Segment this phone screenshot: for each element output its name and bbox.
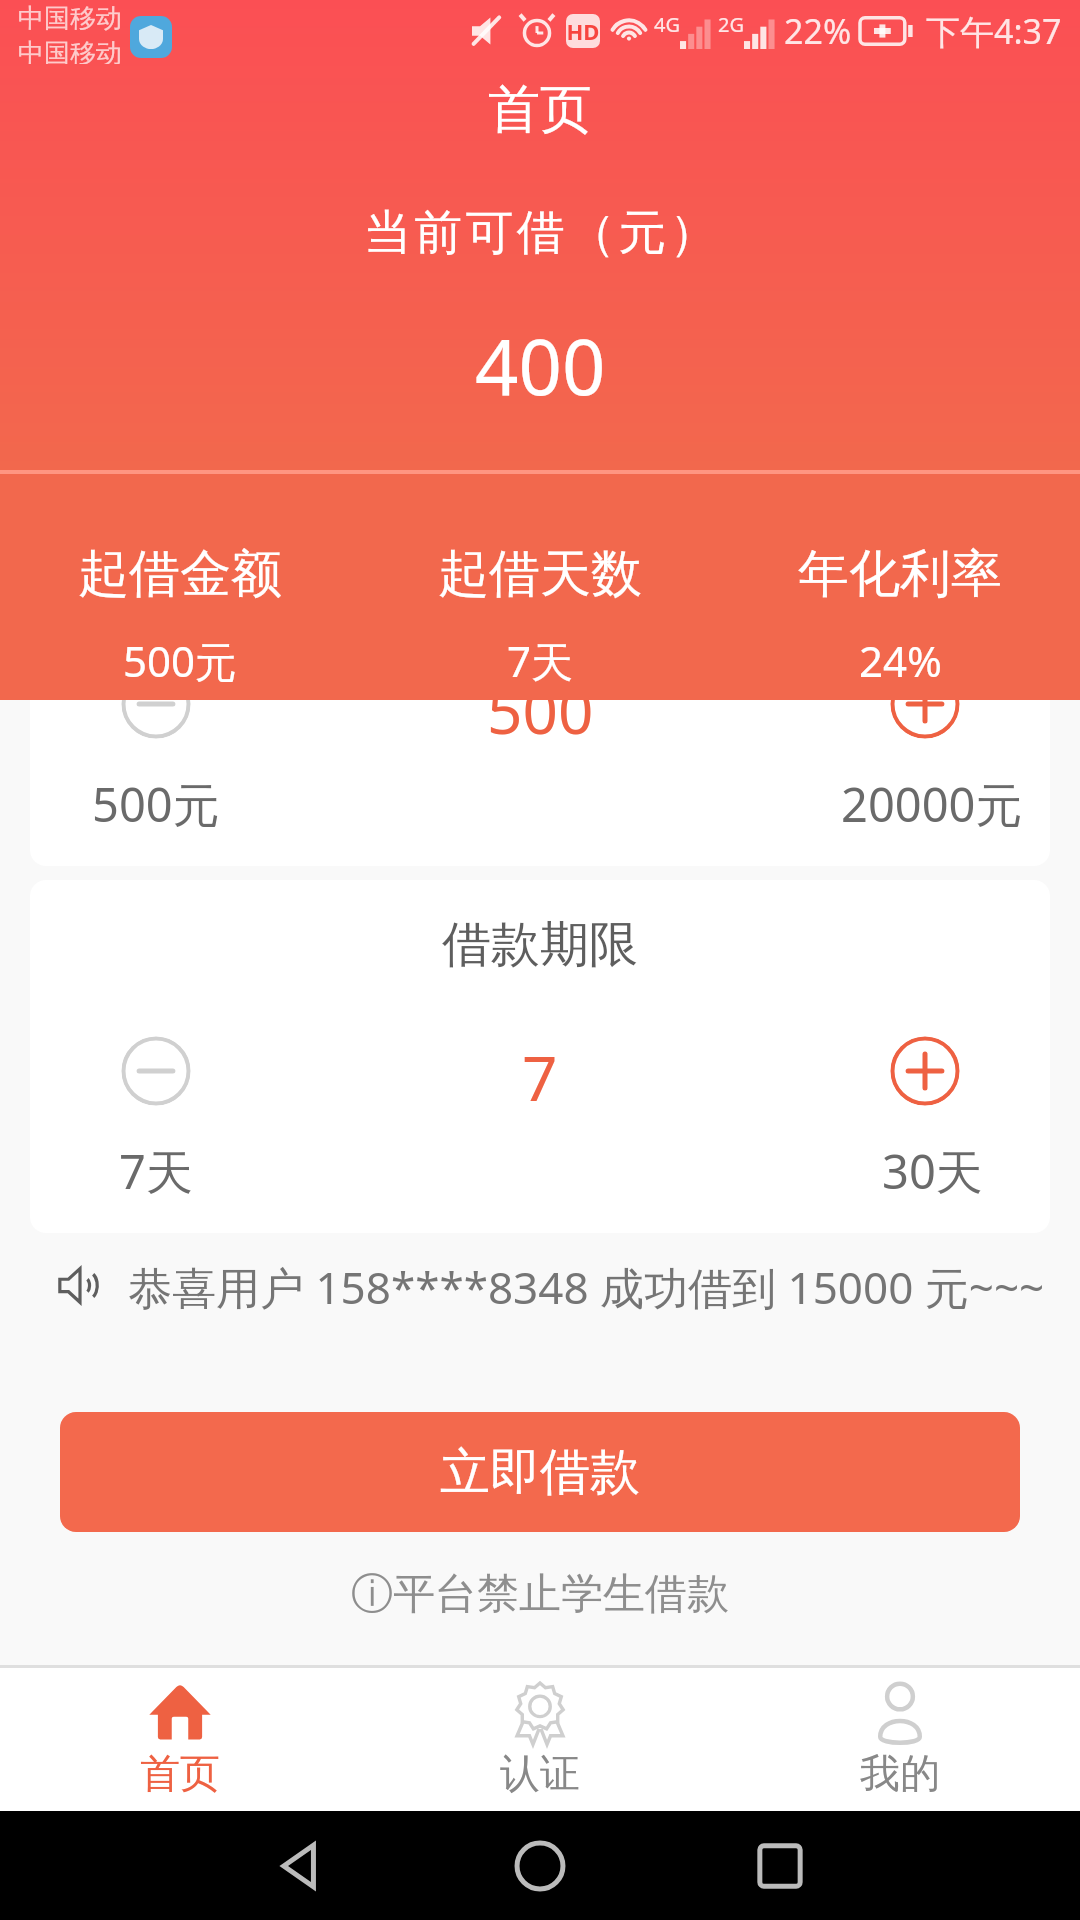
staticText: 500元 [92, 772, 220, 836]
button[interactable]: Back [180, 1811, 420, 1920]
staticText: 2G [718, 11, 744, 38]
staticText: 500 [487, 668, 594, 752]
staticText: 起借金额 [78, 542, 282, 606]
button[interactable]: Increase [890, 669, 960, 739]
staticText: 我的 [860, 1748, 940, 1798]
staticText: 400 [475, 314, 606, 418]
staticText: 7 [522, 1035, 558, 1119]
staticText: 首页 [140, 1748, 220, 1798]
button[interactable]: Decrease [121, 669, 191, 739]
staticText: 4G [654, 11, 680, 38]
staticText: 中国移动 [18, 37, 122, 64]
staticText: 借款金额 [442, 547, 638, 609]
staticText: 中国移动 [18, 2, 122, 35]
button[interactable]: Recent apps [660, 1811, 900, 1920]
staticText: 立即借款 [440, 1441, 640, 1504]
button[interactable]: Increase [890, 1036, 960, 1106]
staticText: 7天 [119, 1139, 193, 1203]
staticText: 500元 [123, 632, 238, 689]
staticText: 30天 [882, 1139, 983, 1203]
staticText: ⓘ平台禁止学生借款 [0, 1568, 1080, 1621]
staticText: 恭喜用户 158****8348 成功借到 15000 元~~~ [128, 1257, 1045, 1313]
button[interactable]: 我的 [720, 1668, 1080, 1811]
staticText: 下午4:37 [926, 8, 1062, 54]
staticText: HD [566, 16, 600, 46]
staticText: 20000元 [841, 772, 1023, 836]
staticText: 当前可借（元） [362, 203, 719, 263]
staticText: 首页 [488, 77, 592, 143]
button[interactable]: Home [420, 1811, 660, 1920]
staticText: 7天 [507, 632, 574, 689]
button[interactable]: 首页 [0, 1668, 360, 1811]
button[interactable]: 认证 [360, 1668, 720, 1811]
staticText: 借款期限 [442, 914, 638, 976]
button[interactable]: Decrease [121, 1036, 191, 1106]
staticText: 22% [784, 8, 852, 54]
staticText: 认证 [500, 1748, 580, 1798]
staticText: 起借天数 [438, 542, 642, 606]
staticText: 24% [859, 632, 942, 689]
button[interactable]: 立即借款 [60, 1412, 1020, 1532]
staticText: 年化利率 [798, 542, 1002, 606]
button[interactable]: 恭喜用户 158****8348 成功借到 15000 元~~~ [0, 1257, 1080, 1313]
